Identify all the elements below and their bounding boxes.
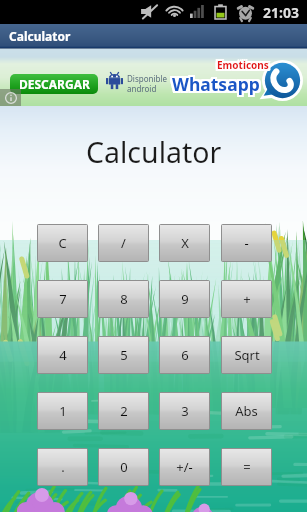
staticText: Emoticons [219,60,271,74]
button[interactable]: 4 [38,337,87,373]
button[interactable]: . [38,449,87,485]
button[interactable]: X [160,225,209,261]
staticText: Whatsapp [172,72,260,96]
staticText: Whatsapp [174,74,262,98]
staticText: 6 [181,346,189,364]
button[interactable]: 2 [99,393,148,429]
staticText: Emoticons [219,58,271,72]
staticText: DESCARGAR [19,76,90,92]
staticText: Calculator [9,28,71,44]
staticText: 1 [59,402,67,420]
button[interactable]: 8 [99,281,148,317]
staticText: = [243,458,251,476]
staticText: Emoticons [215,56,267,70]
staticText: Emoticons [215,60,267,74]
staticText: Emoticons [215,58,267,72]
staticText: Emoticons [219,56,271,70]
staticText: 8 [120,290,128,308]
staticText: / [121,234,126,252]
staticText: Whatsapp [172,74,260,98]
button[interactable]: 7 [38,281,87,317]
button[interactable]: 1 [38,393,87,429]
staticText: 4 [59,346,67,364]
button[interactable]: 6 [160,337,209,373]
button[interactable]: DESCARGAR [0,49,307,106]
staticText: Disponible [127,73,167,84]
staticText: 0 [120,458,128,476]
staticText: android [127,83,157,94]
button[interactable]: 0 [99,449,148,485]
button[interactable]: 9 [160,281,209,317]
staticText: 2 [120,402,128,420]
button[interactable]: Sqrt [222,337,271,373]
staticText: Whatsapp [170,74,258,98]
staticText: 21:03 [263,3,299,22]
staticText: . [61,458,65,476]
staticText: 3 [181,402,189,420]
staticText: Whatsapp [170,70,258,94]
staticText: +/- [176,458,193,476]
staticText: X [181,234,189,252]
button[interactable]: 3 [160,393,209,429]
staticText: Emoticons [217,60,269,74]
staticText: 9 [181,290,189,308]
staticText: Whatsapp [174,72,262,96]
staticText: Calculator [86,133,222,172]
staticText: Whatsapp [170,72,258,96]
staticText: 5 [120,346,128,364]
staticText: - [244,234,249,252]
button[interactable]: + [222,281,271,317]
staticText: Emoticons [217,58,269,72]
staticText: Whatsapp [172,70,260,94]
staticText: C [58,234,67,252]
button[interactable]: / [99,225,148,261]
staticText: 7 [59,290,67,308]
staticText: Sqrt [234,346,260,364]
button[interactable]: 5 [99,337,148,373]
button[interactable]: Abs [222,393,271,429]
button[interactable]: Ad info [0,89,21,106]
button[interactable]: +/- [160,449,209,485]
staticText: + [243,290,251,308]
button[interactable]: - [222,225,271,261]
button[interactable]: = [222,449,271,485]
staticText: Emoticons [217,56,269,70]
staticText: Whatsapp [174,70,262,94]
button[interactable]: C [38,225,87,261]
staticText: Abs [235,402,258,420]
